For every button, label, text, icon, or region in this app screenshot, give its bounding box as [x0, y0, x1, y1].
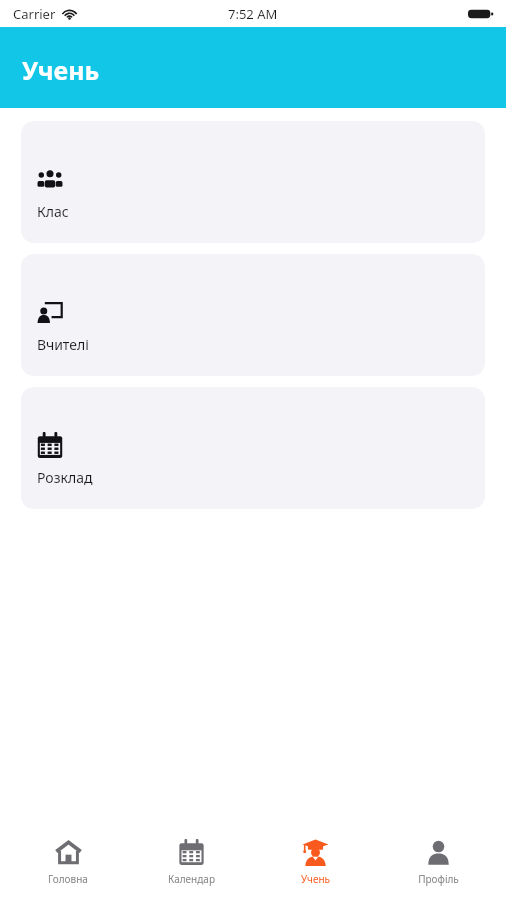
staticText: 7:52 AM: [228, 5, 278, 23]
other: Календар: [178, 839, 205, 866]
staticText: Вчителі: [37, 335, 89, 354]
other: Головна: [55, 839, 82, 866]
staticText: Головна: [48, 872, 88, 886]
staticText: Розклад: [37, 468, 93, 487]
button[interactable]: Головна: [13, 833, 123, 892]
staticText: Профіль: [418, 872, 459, 886]
staticText: Учень: [301, 872, 330, 886]
staticText: Carrier: [13, 5, 56, 23]
button[interactable]: Календар: [136, 833, 246, 892]
button[interactable]: Розклад: [21, 387, 485, 509]
button[interactable]: Вчителі: [21, 254, 485, 376]
staticText: Учень: [22, 53, 100, 87]
button[interactable]: Учень: [260, 833, 370, 892]
staticText: Календар: [168, 872, 215, 886]
other: Профіль: [425, 839, 452, 866]
button[interactable]: Профіль: [383, 833, 493, 892]
other: Учень: [302, 839, 329, 866]
staticText: Клас: [37, 202, 69, 221]
button[interactable]: Клас: [21, 121, 485, 243]
